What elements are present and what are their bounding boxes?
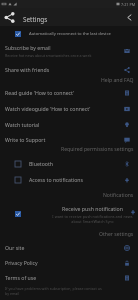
button[interactable]: Watch videoguide 'How to connect' [0, 102, 138, 115]
other: Read guide [124, 90, 130, 96]
other: Write to Support [124, 137, 130, 143]
staticText: Notifications [103, 192, 134, 199]
staticText: Privacy Policy [5, 259, 38, 266]
staticText: Other settings [99, 231, 134, 238]
staticText: Watch videoguide 'How to connect' [5, 105, 91, 112]
staticText: Settings [23, 15, 48, 24]
button[interactable]: Subscribe by email [0, 42, 138, 60]
button[interactable]: Privacy Policy [0, 256, 138, 269]
button[interactable]: Terms of use [0, 271, 138, 284]
staticText: Write to Support [5, 136, 46, 143]
other: Bluetooth [124, 161, 130, 167]
staticText: Bluetooth [29, 160, 54, 167]
other: Subscribe by email [124, 48, 130, 54]
button[interactable]: Read guide 'How to connect' [0, 86, 138, 99]
other: Share with friends [124, 67, 130, 73]
button[interactable]: Share with friends [0, 63, 138, 76]
staticText: Our site [5, 244, 25, 251]
staticText: Subscribe by email [5, 44, 51, 51]
button[interactable]: Write to Support [0, 133, 138, 146]
staticText: Share with friends [5, 66, 50, 73]
staticText: Receive hot news about smartwatches once… [5, 53, 92, 58]
staticText: Automatically reconnect to the last devi… [29, 31, 111, 37]
other: Terms of use [124, 275, 130, 281]
staticText: Terms of use [5, 274, 37, 281]
button[interactable]: Watch tutorial [0, 118, 138, 131]
staticText: Read guide 'How to connect' [5, 89, 75, 96]
button[interactable]: Automatically reconnect to the last devi… [0, 28, 138, 40]
other: Watch tutorial [124, 122, 130, 128]
button[interactable]: Bluetooth [0, 157, 138, 170]
other: Receive push notification [130, 209, 136, 215]
other: Access to notifications [124, 177, 130, 183]
staticText: Watch tutorial [5, 121, 40, 128]
staticText: If you have problems with subscription, … [5, 286, 102, 296]
button[interactable]: Receive push notification [0, 203, 138, 225]
staticText: Access to notifications [29, 176, 84, 183]
button[interactable]: Our site [0, 241, 138, 254]
other: Our site [124, 245, 130, 251]
other: Watch videoguide [124, 106, 130, 112]
button[interactable]: Share [4, 12, 15, 23]
staticText: Help and FAQ [101, 77, 134, 84]
button[interactable]: Access to notifications [0, 173, 138, 186]
staticText: Receive push notification [62, 205, 123, 212]
staticText: Required permissions settings [61, 146, 134, 153]
button[interactable]: Back [124, 12, 135, 23]
other: Privacy Policy [124, 260, 130, 266]
staticText: 7:21 PM [121, 2, 136, 7]
staticText: I want to receive push notifications and… [52, 214, 133, 224]
